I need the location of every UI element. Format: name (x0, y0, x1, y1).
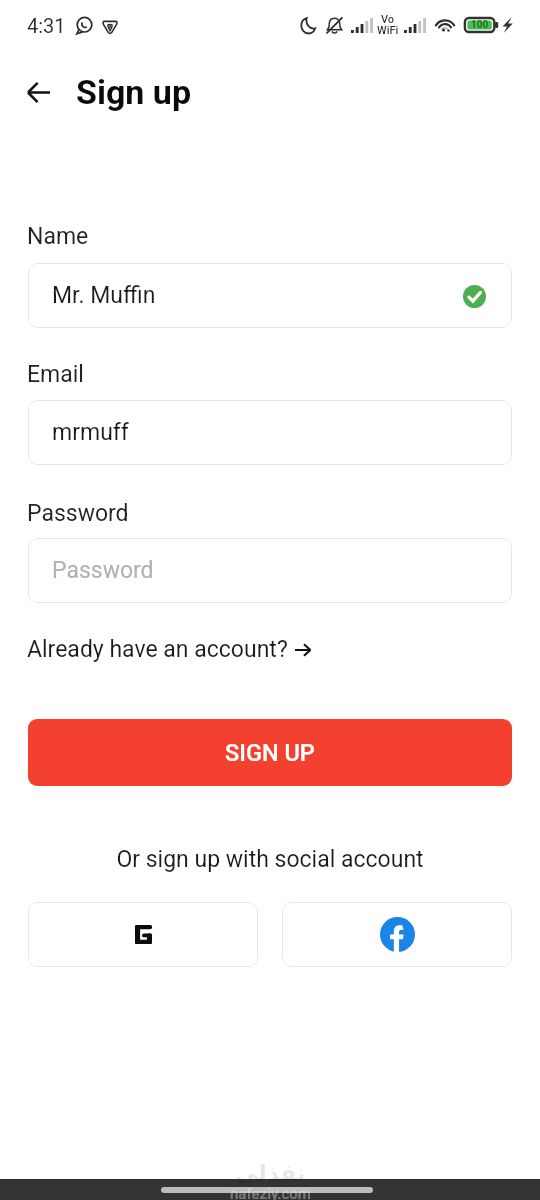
button[interactable]: Home (161, 1187, 373, 1193)
staticText: Mr. Muffin (52, 282, 156, 309)
staticText: Name (27, 223, 89, 250)
button[interactable]: mrmuff (28, 400, 512, 465)
staticText: نفذلي (235, 1160, 306, 1187)
staticText: Vo (381, 13, 395, 26)
staticText: Password (27, 500, 129, 527)
staticText: nafeziy.com (230, 1185, 311, 1200)
staticText: Already have an account? (27, 636, 288, 663)
button[interactable]: SIGN UP (28, 719, 512, 786)
button[interactable]: Sign up with Facebook (282, 902, 512, 967)
button[interactable]: Mr. Muffin (28, 263, 512, 328)
button[interactable]: Sign up with Google (28, 902, 258, 967)
staticText: Password (52, 557, 154, 584)
staticText: 100 (471, 19, 489, 31)
staticText: Or sign up with social account (0, 846, 540, 873)
staticText: mrmuff (52, 419, 129, 446)
button[interactable]: Already have an account? (27, 634, 311, 665)
button[interactable]: Back (14, 68, 62, 116)
staticText: Email (27, 361, 84, 388)
staticText: SIGN UP (225, 739, 315, 767)
staticText: 4:31 (27, 14, 66, 37)
staticText: WiFi (377, 24, 399, 37)
button[interactable]: Password (28, 538, 512, 603)
staticText: Sign up (76, 72, 192, 112)
